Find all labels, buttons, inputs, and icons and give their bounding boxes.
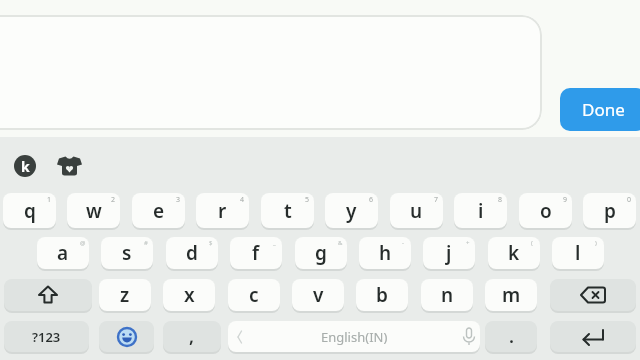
button[interactable]: k [14, 155, 36, 177]
staticText: 9 [563, 195, 568, 205]
staticText: o [540, 198, 552, 224]
staticText: 3 [176, 195, 181, 205]
staticText: b [376, 282, 388, 308]
staticText: + [466, 239, 470, 247]
staticText: f [252, 240, 260, 266]
button[interactable] [550, 321, 636, 352]
button[interactable]: x [163, 279, 215, 311]
button[interactable]: p [583, 193, 636, 228]
button[interactable]: i [454, 193, 507, 228]
staticText: h [379, 240, 392, 266]
button[interactable] [57, 156, 82, 178]
button[interactable]: n [421, 279, 473, 311]
staticText: & [338, 239, 343, 247]
button[interactable] [550, 279, 636, 311]
button[interactable]: a [37, 237, 89, 269]
button[interactable]: o [519, 193, 572, 228]
button[interactable]: v [292, 279, 344, 311]
button[interactable]: u [390, 193, 443, 228]
staticText: , [189, 324, 195, 349]
button[interactable]: s [101, 237, 153, 269]
button[interactable]: r [196, 193, 249, 228]
staticText: z [120, 282, 130, 308]
staticText: Done [582, 98, 625, 121]
button[interactable]: Done [560, 88, 640, 131]
button[interactable]: l [552, 237, 604, 269]
button[interactable]: j [423, 237, 475, 269]
staticText: u [410, 198, 423, 224]
staticText: j [446, 240, 452, 266]
staticText: 4 [240, 195, 245, 205]
button[interactable]: f [230, 237, 282, 269]
staticText: 1 [47, 195, 52, 205]
staticText: 8 [498, 195, 503, 205]
staticText: $ [209, 239, 213, 247]
staticText: - [402, 239, 404, 247]
staticText: k [508, 240, 520, 266]
staticText: English(IN) [321, 328, 388, 346]
staticText: v [313, 282, 324, 308]
button[interactable]: . [485, 321, 537, 352]
button[interactable]: q [3, 193, 56, 228]
staticText: . [509, 324, 514, 349]
staticText: 7 [434, 195, 439, 205]
staticText: w [86, 198, 102, 224]
staticText: _ [273, 239, 276, 247]
button[interactable]: w [67, 193, 120, 228]
staticText: # [144, 239, 148, 247]
button[interactable] [99, 321, 154, 352]
staticText: i [478, 198, 484, 224]
button[interactable]: m [485, 279, 537, 311]
staticText: m [502, 282, 521, 308]
staticText: ( [531, 239, 533, 247]
button[interactable]: d [166, 237, 218, 269]
staticText: t [284, 198, 292, 224]
button[interactable]: z [99, 279, 151, 311]
staticText: 2 [111, 195, 116, 205]
button[interactable]: g [295, 237, 347, 269]
staticText: ?123 [32, 328, 61, 346]
button[interactable]: ?123 [4, 321, 89, 352]
staticText: e [153, 198, 165, 224]
staticText: r [218, 198, 227, 224]
staticText: p [604, 198, 616, 224]
button[interactable]: b [356, 279, 408, 311]
staticText: g [315, 240, 327, 266]
button[interactable]: c [228, 279, 280, 311]
staticText: d [186, 240, 198, 266]
staticText: s [122, 240, 132, 266]
staticText: 5 [305, 195, 310, 205]
button[interactable] [0, 15, 542, 130]
staticText: x [184, 282, 195, 308]
staticText: c [249, 282, 259, 308]
staticText: a [57, 240, 69, 266]
staticText: @ [80, 239, 86, 247]
staticText: q [24, 198, 36, 224]
button[interactable]: k [488, 237, 540, 269]
staticText: 0 [627, 195, 632, 205]
button[interactable] [228, 321, 480, 352]
staticText: y [346, 198, 357, 224]
button[interactable]: t [261, 193, 314, 228]
staticText: n [441, 282, 454, 308]
staticText: l [575, 240, 581, 266]
staticText: k [21, 157, 30, 176]
button[interactable] [4, 279, 92, 311]
button[interactable]: , [163, 321, 221, 352]
staticText: ) [595, 239, 597, 247]
staticText: 6 [369, 195, 374, 205]
button[interactable]: h [359, 237, 411, 269]
button[interactable]: e [132, 193, 185, 228]
button[interactable]: y [325, 193, 378, 228]
